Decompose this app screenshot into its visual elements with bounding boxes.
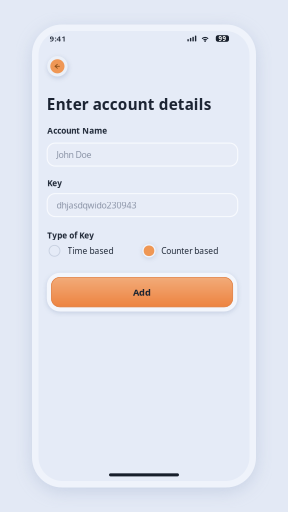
button[interactable]: Add	[47, 273, 237, 311]
staticText: Account Name	[47, 125, 107, 136]
staticText: 9:41	[49, 33, 66, 44]
button[interactable]: dhjasdqwido230943	[47, 194, 238, 217]
staticText: Add	[133, 286, 151, 298]
button[interactable]: Counter based	[142, 244, 238, 258]
button[interactable]: Back	[46, 55, 68, 77]
staticText: 99	[218, 34, 226, 43]
staticText: dhjasdqwido230943	[57, 199, 137, 211]
staticText: Counter based	[161, 245, 218, 256]
staticText: Key	[47, 177, 62, 189]
staticText: Type of Key	[47, 230, 94, 241]
staticText: John Doe	[57, 149, 92, 161]
button[interactable]: Time based	[48, 244, 142, 258]
staticText: Enter account details	[47, 94, 212, 114]
button[interactable]: John Doe	[47, 143, 238, 166]
staticText: Time based	[68, 245, 114, 256]
